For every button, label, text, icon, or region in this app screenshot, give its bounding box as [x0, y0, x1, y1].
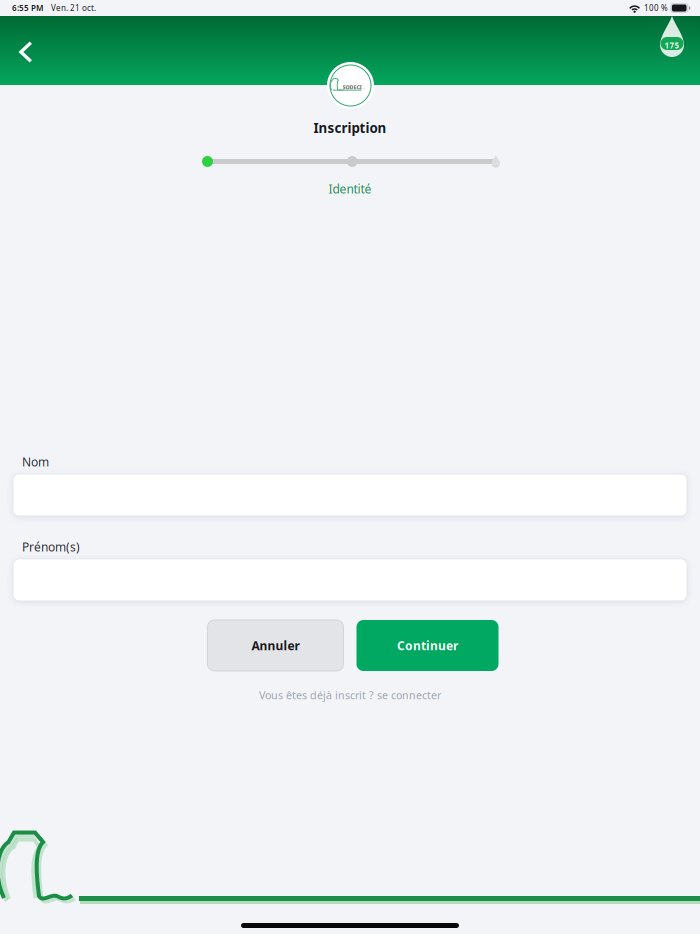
staticText: Prénom(s) — [22, 539, 80, 555]
staticText: Identité — [328, 181, 371, 197]
staticText: 6:55 PM — [12, 3, 43, 13]
staticText: 175 — [664, 40, 679, 51]
button[interactable]: Annuler — [207, 620, 343, 671]
button[interactable]: Continuer — [356, 620, 498, 671]
staticText: SODECI — [342, 84, 361, 91]
staticText: Continuer — [397, 637, 458, 653]
staticText: Inscription — [313, 119, 386, 137]
staticText: Nom — [22, 454, 49, 470]
staticText: Vous êtes déjà inscrit ? se connecter — [259, 688, 441, 702]
staticText: Annuler — [251, 637, 299, 653]
button[interactable]: Retour — [0, 16, 51, 85]
staticText: .. — [363, 84, 365, 89]
button[interactable]: Vous êtes déjà inscrit ? se connecter — [259, 688, 441, 702]
staticText: Ven. 21 oct. — [51, 3, 96, 13]
staticText: 100 % — [644, 3, 668, 13]
